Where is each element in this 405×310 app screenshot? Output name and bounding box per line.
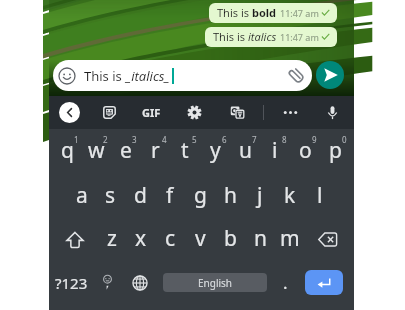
staticText: This is [84,67,126,85]
button[interactable]: g [185,175,215,218]
button[interactable]: This is [53,60,312,91]
button[interactable]: Emoji [93,261,122,304]
staticText: y [210,136,221,165]
staticText: v [195,224,206,253]
button[interactable]: j [245,175,275,218]
staticText: j [257,181,263,210]
staticText: c [165,224,176,253]
button[interactable]: x [126,218,155,261]
staticText: f [166,181,174,210]
staticText: 9 [312,134,317,145]
button[interactable]: f [155,175,185,218]
staticText: d [134,181,147,210]
button[interactable]: t [170,132,200,175]
button[interactable]: This is [209,3,337,23]
button[interactable]: ?123 [53,261,90,304]
staticText: x [135,224,147,253]
staticText: t [181,136,189,165]
button[interactable]: m [275,218,305,261]
staticText: q [61,136,74,165]
button[interactable]: English [163,273,267,292]
button[interactable]: w [82,132,111,175]
staticText: GIF [142,105,161,120]
staticText: m [280,224,300,253]
staticText: r [151,136,160,165]
staticText: This is [213,29,248,44]
button[interactable]: i [260,132,290,175]
button[interactable]: e [111,132,140,175]
staticText: p [329,136,342,165]
staticText: ?123 [55,273,88,293]
button[interactable]: l [305,175,335,218]
staticText: k [284,181,296,210]
button[interactable]: n [245,218,275,261]
button[interactable]: p [320,132,350,175]
staticText: italics [248,29,277,44]
staticText: 4 [162,134,167,145]
button[interactable]: Shift [53,218,97,261]
button[interactable]: h [215,175,245,218]
staticText: 7 [252,134,257,145]
staticText: . [283,271,288,294]
button[interactable]: r [140,132,170,175]
button[interactable]: b [215,218,245,261]
other: Attach [288,67,305,84]
staticText: s [105,181,116,210]
staticText: 0 [342,134,347,145]
staticText: i [272,136,278,165]
staticText: h [224,181,237,210]
staticText: 2 [103,134,108,145]
button[interactable]: s [96,175,125,218]
staticText: z [107,224,117,253]
button[interactable]: k [275,175,305,218]
staticText: 1 [74,134,79,145]
button[interactable]: Settings [184,102,205,123]
button[interactable]: This is [205,27,337,47]
staticText: 5 [192,134,197,145]
button[interactable]: y [200,132,230,175]
staticText: bold [252,5,277,20]
staticText: e [120,136,132,165]
staticText: l [317,181,323,210]
button[interactable]: u [230,132,260,175]
button[interactable]: Voice input [322,102,343,123]
button[interactable]: Send [316,61,344,89]
button[interactable]: o [290,132,320,175]
button[interactable]: v [185,218,215,261]
staticText: g [194,181,207,210]
button[interactable]: a [67,175,96,218]
button[interactable]: Backspace [305,218,350,261]
staticText: n [254,224,267,253]
staticText: o [299,136,312,165]
staticText: 3 [132,134,137,145]
button[interactable]: Change language [125,261,154,304]
staticText: w [88,136,105,165]
staticText: a [76,181,88,210]
button[interactable]: q [53,132,82,175]
staticText: 6 [222,134,227,145]
button[interactable]: GIF [140,102,162,123]
button[interactable]: d [125,175,155,218]
button[interactable]: . [271,261,300,304]
staticText: b [224,224,237,253]
staticText: u [239,136,252,165]
button[interactable]: c [155,218,185,261]
button[interactable]: z [97,218,126,261]
staticText: This is [217,5,252,20]
staticText: 11:47 am [280,31,319,43]
button[interactable]: Stickers [99,102,120,123]
staticText: English [198,276,233,290]
staticText: 11:47 am [280,7,319,19]
button[interactable]: Translate [227,102,248,123]
button[interactable]: Back [59,102,80,123]
staticText: 8 [282,134,287,145]
staticText: _italics_ [126,67,170,85]
button[interactable]: More options [280,102,301,123]
button[interactable]: Enter [305,270,343,295]
